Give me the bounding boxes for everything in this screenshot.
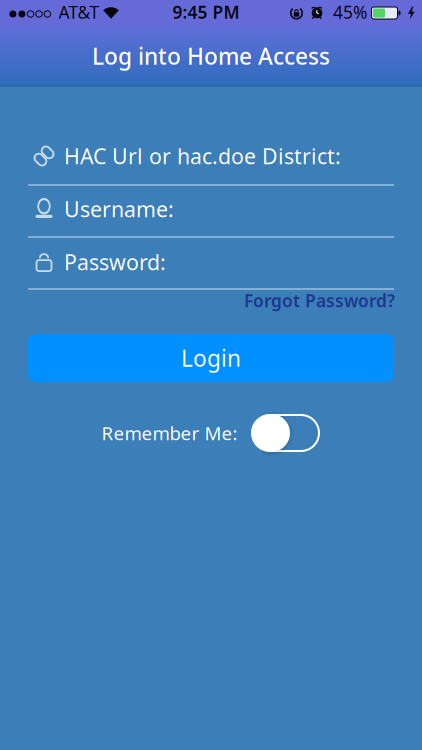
button[interactable]: Username: xyxy=(0,195,422,223)
button[interactable]: Forgot Password? xyxy=(244,289,395,312)
button[interactable]: HAC Url or hac.doe District: xyxy=(0,142,422,170)
staticText: 9:45 PM xyxy=(172,0,239,23)
button[interactable]: Password: xyxy=(0,248,422,276)
staticText: Forgot Password? xyxy=(244,289,395,312)
staticText: Remember Me: xyxy=(101,421,237,445)
staticText: Password: xyxy=(64,248,166,276)
staticText: Username: xyxy=(64,195,174,223)
button[interactable]: Login xyxy=(28,334,394,382)
staticText: HAC Url or hac.doe District: xyxy=(64,142,341,170)
button[interactable] xyxy=(250,413,320,453)
staticText: 45% xyxy=(333,0,367,23)
staticText: Log into Home Access xyxy=(92,41,330,71)
staticText: AT&T xyxy=(58,0,99,23)
staticText: Login xyxy=(181,343,241,373)
